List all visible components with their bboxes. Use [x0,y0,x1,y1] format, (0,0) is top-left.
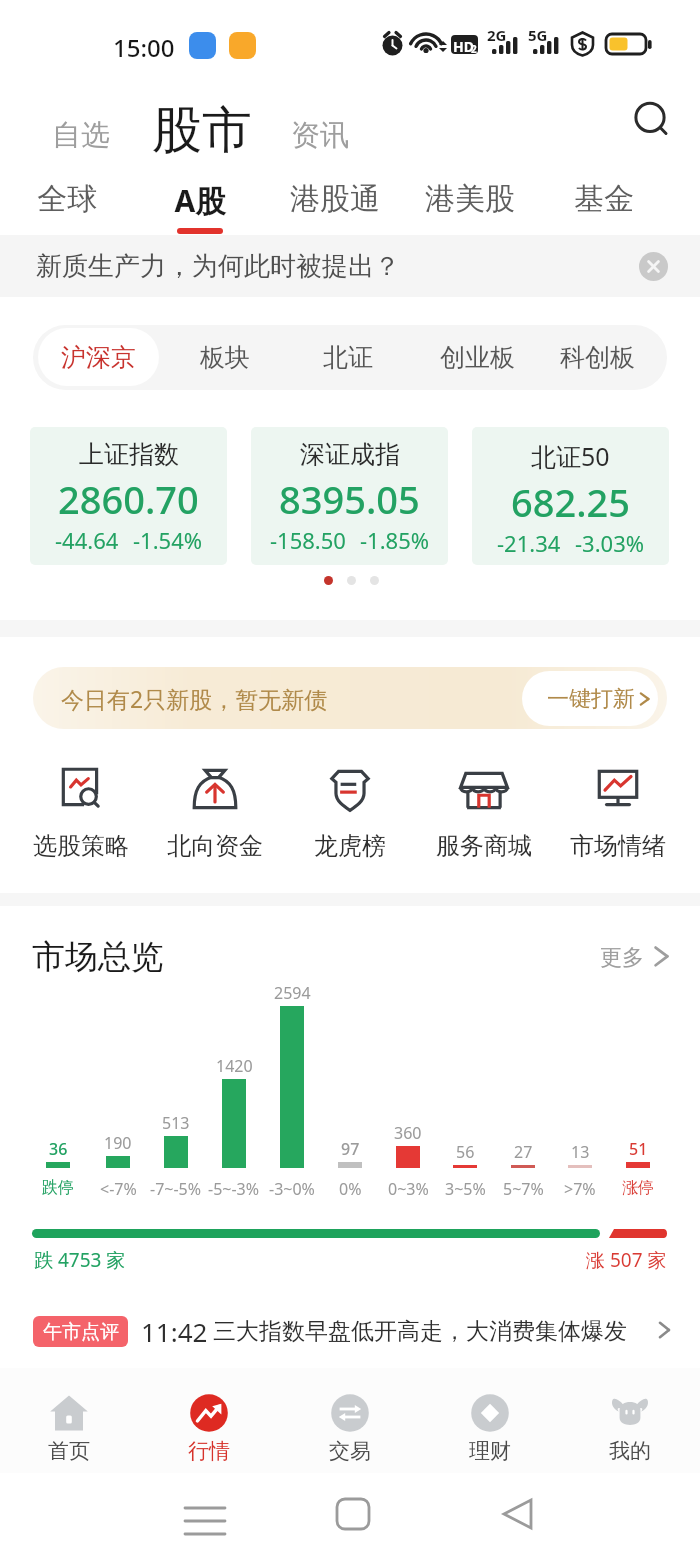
button[interactable]: 今日有2只新股，暂无新债 [33,667,667,729]
staticText: 涨停 [622,1178,654,1198]
staticText: -3.03% [575,528,645,558]
button[interactable]: 市场情绪 [556,755,680,865]
button[interactable]: 一键打新 [522,671,658,726]
staticText: 190 [104,1132,132,1154]
button[interactable]: 北向资金 [153,755,277,865]
staticText: 360 [394,1122,422,1144]
staticText: 行情 [188,1438,230,1464]
staticText: 首页 [48,1438,90,1464]
staticText: 服务商城 [436,831,532,861]
button[interactable]: 港股通 [290,176,380,234]
staticText: 深证成指 [300,439,400,470]
button[interactable]: 午市点评 [0,1300,700,1362]
staticText: 0~3% [388,1178,429,1200]
button[interactable]: Back [487,1490,547,1550]
staticText: 市场总览 [32,936,164,978]
button[interactable]: 选股策略 [19,755,143,865]
button[interactable]: Recents [175,1490,235,1550]
staticText: 2G [487,25,507,45]
staticText: 51 [629,1138,648,1160]
staticText: 北向资金 [167,831,263,861]
staticText: 板块 [200,342,250,373]
button[interactable]: 新质生产力，为何此时被提出？ [0,235,700,297]
button[interactable]: 沪深京 [52,325,144,390]
button[interactable]: 行情 [147,1380,271,1472]
staticText: 科创板 [560,342,635,373]
button[interactable]: 北证 [316,325,380,390]
staticText: 新质生产力，为何此时被提出？ [36,250,400,283]
staticText: 北证50 [531,439,610,473]
button[interactable]: 上证指数 [30,427,227,565]
button[interactable]: 科创板 [551,325,643,390]
staticText: 8395.05 [279,473,420,525]
staticText: 资讯 [291,117,349,154]
staticText: 沪深京 [61,342,136,373]
staticText: A股 [169,180,231,221]
staticText: 自选 [52,117,110,154]
staticText: 跌 4753 家 [34,1247,126,1273]
staticText: -5~-3% [208,1178,260,1200]
staticText: -3~0% [269,1178,315,1200]
staticText: 市场情绪 [570,831,666,861]
staticText: HD [453,37,474,56]
button[interactable]: 股市 [148,95,256,166]
staticText: 3~5% [445,1178,486,1200]
staticText: 我的 [609,1438,651,1464]
staticText: 选股策略 [33,831,129,861]
staticText: 27 [514,1141,533,1163]
staticText: 0% [339,1178,362,1200]
staticText: 跌停 [42,1178,74,1198]
staticText: >7% [564,1178,596,1200]
staticText: 今日有2只新股，暂无新债 [61,683,328,714]
button[interactable]: 自选 [48,113,114,158]
staticText: 上证指数 [79,439,179,470]
button[interactable]: 板块 [193,325,257,390]
staticText: 交易 [329,1438,371,1464]
staticText: -44.64 [55,525,119,555]
staticText: 理财 [469,1438,511,1464]
staticText: 全球 [36,180,98,218]
staticText: -158.50 [270,525,346,555]
button[interactable]: Home [323,1490,383,1550]
button[interactable]: A股 [169,176,231,234]
staticText: 2860.70 [58,473,199,525]
staticText: -1.54% [133,525,203,555]
staticText: 1420 [216,1055,253,1077]
button[interactable]: Search [624,92,676,144]
button[interactable]: 创业板 [431,325,523,390]
staticText: 682.25 [511,476,631,528]
staticText: 15:00 [113,31,175,64]
button[interactable]: 交易 [288,1380,412,1472]
staticText: 午市点评 [43,1320,119,1344]
button[interactable]: 港美股 [425,176,515,234]
button[interactable] [38,328,159,386]
staticText: 5G [528,25,548,45]
staticText: 97 [341,1138,360,1160]
button[interactable]: 理财 [428,1380,552,1472]
button[interactable]: 服务商城 [422,755,546,865]
staticText: 三大指数早盘低开高走，大消费集体爆发 [213,1317,627,1346]
staticText: -7~-5% [150,1178,202,1200]
button[interactable]: 首页 [7,1380,131,1472]
staticText: 龙虎榜 [314,831,386,861]
staticText: 更多 [600,944,644,972]
staticText: 513 [162,1112,190,1134]
staticText: 11:42 [141,1314,208,1349]
button[interactable]: 深证成指 [251,427,448,565]
staticText: 股市 [152,99,252,162]
button[interactable]: 资讯 [287,113,353,158]
staticText: 北证 [323,342,373,373]
staticText: 2594 [274,982,311,1004]
staticText: <-7% [100,1178,137,1200]
button[interactable]: 更多 [592,938,678,978]
button[interactable]: 全球 [36,176,98,234]
staticText: 36 [49,1138,68,1160]
button[interactable]: 基金 [573,176,635,234]
staticText: 56 [456,1141,475,1163]
staticText: 13 [571,1141,590,1163]
staticText: 涨 507 家 [586,1247,667,1273]
button[interactable]: Close banner [634,247,672,285]
button[interactable]: 我的 [568,1380,692,1472]
button[interactable]: 北证50 [472,427,669,565]
button[interactable]: 龙虎榜 [288,755,412,865]
